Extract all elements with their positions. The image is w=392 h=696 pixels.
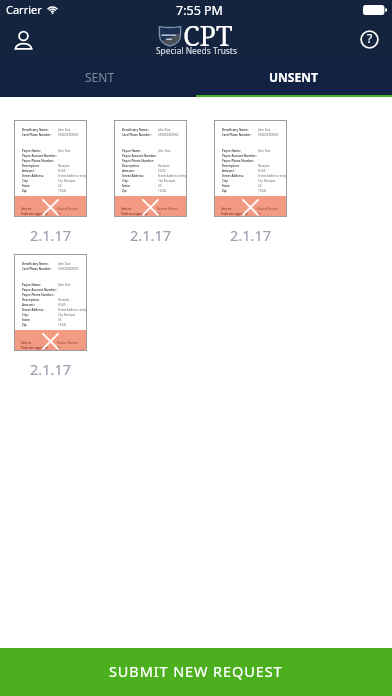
button[interactable]: Beneficiary Name: bbox=[14, 120, 87, 217]
staticText: Special Needs Trusts bbox=[156, 45, 237, 56]
staticText: Bounce Notices bbox=[257, 207, 279, 211]
staticText: John Doe bbox=[58, 262, 71, 266]
staticText: Bounce Notices bbox=[57, 207, 79, 211]
staticText: XXXXXXXXXXXX bbox=[158, 133, 179, 137]
staticText: Beneficiary Name: bbox=[122, 128, 158, 132]
staticText: No bbox=[57, 346, 61, 350]
staticText: John Doe bbox=[58, 149, 71, 153]
staticText: Beneficiary Name: bbox=[22, 262, 58, 266]
staticText: XXXXXXXXXXXX bbox=[58, 267, 79, 271]
button[interactable]: Profile bbox=[8, 25, 38, 55]
staticText: City Receipts bbox=[258, 179, 276, 183]
staticText: Payee Name: bbox=[22, 283, 58, 287]
staticText: XXXXXXXXXXXX bbox=[58, 133, 79, 137]
staticText: City: bbox=[22, 179, 58, 183]
staticText: 2.1.17 bbox=[30, 359, 71, 379]
staticText: Sent to bbox=[221, 207, 257, 211]
staticText: Street Address receipts bbox=[158, 174, 187, 178]
staticText: Description: bbox=[122, 164, 158, 168]
staticText: John Doe bbox=[58, 283, 71, 287]
staticText: Card Phase Number: bbox=[22, 267, 58, 271]
staticText: Payee Phone Number: bbox=[22, 293, 58, 297]
staticText: Card Phase Number: bbox=[222, 133, 258, 137]
staticText: Payee Name: bbox=[22, 149, 58, 153]
staticText: $0.00 bbox=[58, 169, 66, 173]
staticText: US bbox=[58, 184, 62, 188]
staticText: 2.1.17 bbox=[30, 225, 71, 245]
staticText: UNSENT bbox=[269, 69, 318, 85]
staticText: Carrier bbox=[6, 2, 42, 17]
staticText: Payee Account Number: bbox=[22, 288, 58, 292]
staticText: Receipts bbox=[158, 164, 170, 168]
staticText: Receipts bbox=[258, 164, 270, 168]
staticText: Bounce Notices bbox=[157, 207, 179, 211]
staticText: Payee Name: bbox=[122, 149, 158, 153]
button[interactable]: Beneficiary Name: bbox=[14, 254, 87, 351]
button[interactable]: Beneficiary Name: bbox=[114, 120, 187, 217]
staticText: 2.1.17 bbox=[130, 225, 171, 245]
staticText: Beneficiary Name: bbox=[22, 128, 58, 132]
staticText: City Receipts bbox=[158, 179, 176, 183]
staticText: 12345 bbox=[158, 189, 167, 193]
button[interactable]: Help bbox=[354, 24, 384, 54]
staticText: Zip: bbox=[22, 189, 58, 193]
staticText: CPT bbox=[183, 17, 233, 54]
button[interactable]: SENT bbox=[0, 64, 196, 97]
staticText: Amount: bbox=[22, 303, 58, 307]
staticText: Sent to bbox=[21, 341, 57, 345]
staticText: John Doe bbox=[158, 128, 171, 132]
staticText: SENT bbox=[85, 69, 115, 85]
staticText: Card Phase Number: bbox=[22, 133, 58, 137]
staticText: Street Address: bbox=[222, 174, 258, 178]
staticText: Amount: bbox=[22, 169, 58, 173]
staticText: Zip: bbox=[22, 323, 58, 327]
staticText: Payee Account Number: bbox=[122, 154, 158, 158]
staticText: Street Address receipts bbox=[258, 174, 287, 178]
staticText: Receipts bbox=[58, 164, 70, 168]
staticText: No bbox=[57, 212, 61, 216]
staticText: Street Address receipts bbox=[58, 174, 87, 178]
staticText: John Doe bbox=[258, 149, 271, 153]
staticText: No bbox=[157, 212, 161, 216]
staticText: 2.1.17 bbox=[230, 225, 271, 245]
staticText: 12345 bbox=[58, 189, 67, 193]
staticText: SUBMIT NEW REQUEST bbox=[109, 661, 283, 681]
staticText: Payee Phone Number: bbox=[122, 159, 158, 163]
staticText: John Doe bbox=[258, 128, 271, 132]
staticText: Push one approval bbox=[21, 346, 57, 350]
staticText: Sent to bbox=[21, 207, 57, 211]
staticText: State: bbox=[122, 184, 158, 188]
staticText: Payee Phone Number: bbox=[222, 159, 258, 163]
staticText: John Doe bbox=[158, 149, 171, 153]
staticText: Beneficiary Name: bbox=[222, 128, 258, 132]
staticText: Amount: bbox=[122, 169, 158, 173]
staticText: State: bbox=[22, 184, 58, 188]
staticText: US bbox=[58, 318, 62, 322]
staticText: Receipts bbox=[58, 298, 70, 302]
staticText: Description: bbox=[22, 298, 58, 302]
staticText: US bbox=[158, 184, 162, 188]
staticText: $0.00 bbox=[258, 169, 266, 173]
staticText: City Receipts bbox=[58, 179, 76, 183]
button[interactable]: SUBMIT NEW REQUEST bbox=[0, 648, 392, 696]
staticText: Payee Account Number: bbox=[222, 154, 258, 158]
staticText: Push one approval bbox=[221, 212, 257, 216]
staticText: ? bbox=[367, 30, 373, 46]
staticText: Card Phase Number: bbox=[122, 133, 158, 137]
staticText: John Doe bbox=[58, 128, 71, 132]
staticText: City Receipts bbox=[58, 313, 76, 317]
staticText: City: bbox=[22, 313, 58, 317]
staticText: Zip: bbox=[222, 189, 258, 193]
staticText: 12345 bbox=[58, 323, 67, 327]
staticText: Push one approval bbox=[121, 212, 157, 216]
staticText: Street Address: bbox=[122, 174, 158, 178]
staticText: Payee Account Number: bbox=[22, 154, 58, 158]
button[interactable]: UNSENT bbox=[196, 64, 392, 97]
staticText: Payee Name: bbox=[222, 149, 258, 153]
staticText: US bbox=[258, 184, 262, 188]
staticText: Push one approval bbox=[21, 212, 57, 216]
staticText: Bounce Notices bbox=[57, 341, 79, 345]
button[interactable]: Beneficiary Name: bbox=[214, 120, 287, 217]
staticText: $0.00 bbox=[58, 303, 66, 307]
staticText: State: bbox=[222, 184, 258, 188]
